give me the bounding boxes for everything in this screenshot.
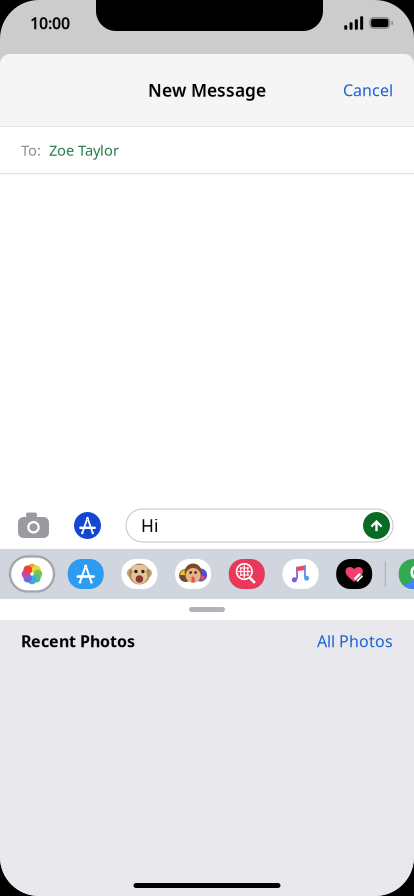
button[interactable]: All Photos: [309, 624, 414, 658]
button[interactable]: Photos: [10, 556, 54, 591]
button[interactable]: App Store: [68, 559, 104, 589]
button[interactable]: Maps: [399, 559, 414, 589]
staticText: 10:00: [30, 12, 70, 34]
staticText: To:: [21, 140, 41, 160]
button[interactable]: Send: [363, 512, 390, 539]
button[interactable]: Music: [282, 559, 318, 589]
staticText: Hi: [141, 514, 158, 537]
button[interactable]: Apps: [68, 506, 107, 545]
button[interactable]: Images: [229, 559, 265, 589]
staticText: Cancel: [343, 79, 393, 101]
staticText: All Photos: [317, 630, 393, 652]
staticText: G: [409, 558, 414, 585]
staticText: New Message: [148, 78, 266, 101]
staticText: Recent Photos: [21, 630, 135, 652]
button[interactable]: Cancel: [335, 69, 414, 111]
staticText: Zoe Taylor: [41, 140, 119, 160]
button[interactable]: Camera: [0, 505, 55, 546]
button[interactable]: Memoji: [121, 559, 157, 589]
button[interactable]: Memoji Stickers: [175, 559, 211, 589]
button[interactable]: Digital Touch: [336, 559, 372, 589]
